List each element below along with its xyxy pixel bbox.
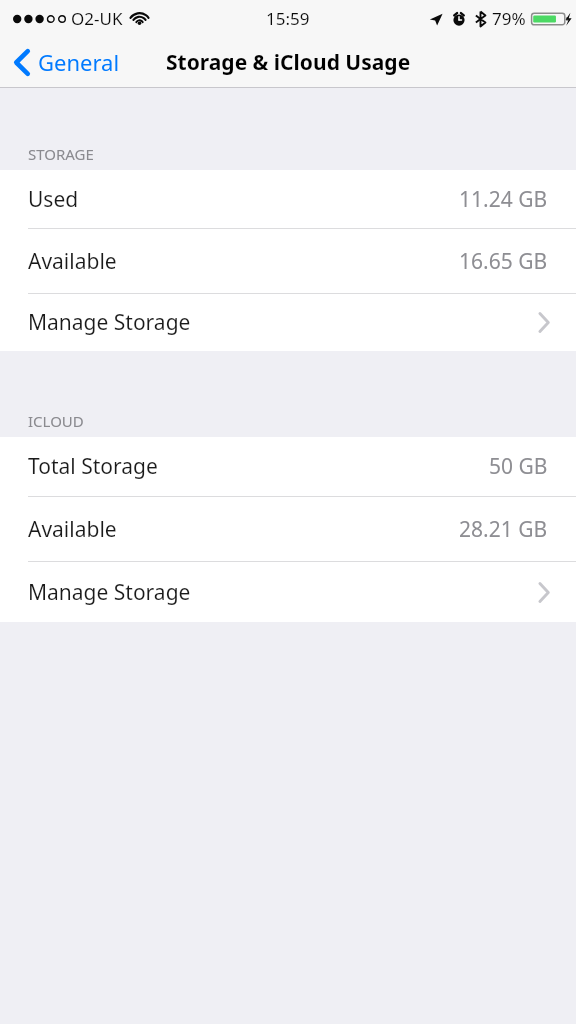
staticText: Total Storage [28, 452, 158, 481]
button[interactable]: Manage Storage [0, 562, 576, 622]
staticText: Available [28, 247, 117, 276]
staticText: Storage & iCloud Usage [166, 48, 411, 77]
other: Open Manage Storage [538, 582, 550, 603]
button[interactable]: Total Storage [0, 437, 576, 496]
staticText: Used [28, 185, 79, 214]
other: Open Manage Storage [538, 312, 550, 333]
staticText: 11.24 GB [459, 185, 548, 214]
staticText: ICLOUD [28, 411, 84, 431]
staticText: Manage Storage [28, 308, 191, 337]
staticText: 28.21 GB [459, 515, 548, 544]
staticText: 15:59 [266, 7, 310, 30]
button[interactable]: Available [0, 229, 576, 293]
button[interactable]: Manage Storage [0, 294, 576, 351]
staticText: General [38, 47, 120, 77]
staticText: 79% [492, 7, 526, 30]
button[interactable]: Available [0, 497, 576, 561]
staticText: STORAGE [28, 144, 94, 164]
staticText: Available [28, 515, 117, 544]
button[interactable]: General [0, 41, 130, 83]
staticText: 50 GB [489, 452, 548, 481]
button[interactable]: Used [0, 170, 576, 228]
staticText: O2-UK [71, 7, 123, 30]
staticText: 16.65 GB [459, 247, 548, 276]
staticText: Manage Storage [28, 578, 191, 607]
